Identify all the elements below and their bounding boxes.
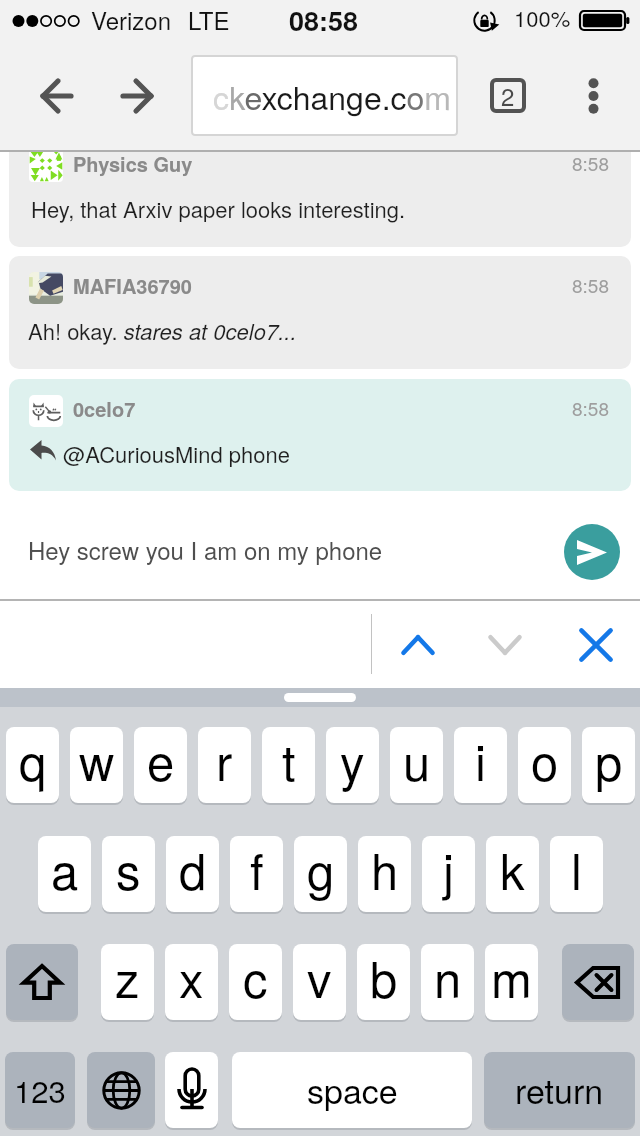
- staticText: i: [475, 727, 486, 795]
- staticText: return: [515, 1065, 604, 1114]
- button[interactable]: Send: [564, 524, 620, 580]
- button[interactable]: Tabs: [490, 78, 526, 113]
- button[interactable]: Backspace: [562, 944, 634, 1020]
- button[interactable]: b: [357, 944, 410, 1020]
- staticText: g: [307, 836, 335, 904]
- button[interactable]: q: [6, 727, 59, 803]
- button[interactable]: Forward: [113, 69, 161, 117]
- button[interactable]: r: [198, 727, 251, 803]
- staticText: f: [250, 836, 264, 904]
- button[interactable]: t: [262, 727, 315, 803]
- button[interactable]: Done: [568, 616, 625, 673]
- staticText: @ACuriousMind phone: [63, 438, 290, 470]
- button[interactable]: m: [485, 944, 538, 1020]
- button[interactable]: o: [518, 727, 571, 803]
- button[interactable]: Previous field: [390, 616, 447, 673]
- staticText: t: [282, 727, 296, 795]
- staticText: space: [307, 1065, 398, 1114]
- staticText: l: [571, 836, 582, 904]
- staticText: q: [19, 727, 47, 795]
- button[interactable]: Next field: [477, 616, 534, 673]
- staticText: ckexchange.com: [213, 73, 452, 119]
- button[interactable]: s: [102, 836, 155, 912]
- button[interactable]: Numbers: [5, 1052, 75, 1128]
- button[interactable]: y: [326, 727, 379, 803]
- staticText: 123: [14, 1067, 66, 1111]
- staticText: v: [307, 944, 332, 1012]
- button[interactable]: u: [390, 727, 443, 803]
- staticText: c: [243, 944, 268, 1012]
- button[interactable]: Dictate: [165, 1052, 218, 1128]
- button[interactable]: Shift: [6, 944, 78, 1020]
- button[interactable]: a: [38, 836, 91, 912]
- staticText: MAFIA36790: [73, 271, 192, 300]
- staticText: 08:58: [289, 1, 359, 40]
- staticText: Hey screw you I am on my phone: [28, 532, 383, 566]
- staticText: Verizon: [91, 2, 172, 36]
- staticText: a: [51, 836, 79, 904]
- button[interactable]: p: [582, 727, 635, 803]
- button[interactable]: Physics Guy: [9, 152, 631, 247]
- staticText: w: [79, 727, 115, 795]
- button[interactable]: v: [293, 944, 346, 1020]
- button[interactable]: g: [294, 836, 347, 912]
- staticText: 8:58: [572, 394, 609, 421]
- staticText: o: [531, 727, 559, 795]
- staticText: Hey, that Arxiv paper looks interesting.: [31, 193, 406, 225]
- staticText: r: [216, 727, 233, 795]
- staticText: b: [370, 944, 398, 1012]
- staticText: Ah! okay. stares at 0celo7...: [28, 315, 297, 347]
- staticText: j: [443, 836, 454, 904]
- staticText: 0celo7: [73, 394, 136, 423]
- button[interactable]: Change keyboard: [87, 1052, 155, 1128]
- staticText: d: [179, 836, 207, 904]
- button[interactable]: z: [101, 944, 154, 1020]
- button[interactable]: Return: [484, 1052, 635, 1128]
- button[interactable]: MAFIA36790: [9, 256, 631, 369]
- staticText: h: [371, 836, 399, 904]
- staticText: 8:58: [572, 271, 609, 298]
- button[interactable]: c: [229, 944, 282, 1020]
- staticText: k: [500, 836, 525, 904]
- staticText: Physics Guy: [73, 152, 193, 178]
- staticText: y: [340, 727, 365, 795]
- staticText: p: [595, 727, 623, 795]
- button[interactable]: ckexchange.com: [191, 55, 458, 136]
- button[interactable]: x: [165, 944, 218, 1020]
- button[interactable]: e: [134, 727, 187, 803]
- staticText: m: [491, 944, 532, 1012]
- staticText: LTE: [188, 2, 230, 36]
- button[interactable]: Resize keyboard: [284, 693, 356, 702]
- button[interactable]: Back: [33, 69, 81, 117]
- staticText: x: [179, 944, 204, 1012]
- staticText: 8:58: [572, 152, 609, 176]
- staticText: e: [147, 727, 175, 795]
- button[interactable]: n: [421, 944, 474, 1020]
- button[interactable]: f: [230, 836, 283, 912]
- button[interactable]: 0celo7: [9, 379, 631, 491]
- button[interactable]: l: [550, 836, 603, 912]
- button[interactable]: h: [358, 836, 411, 912]
- button[interactable]: w: [70, 727, 123, 803]
- button[interactable]: k: [486, 836, 539, 912]
- staticText: s: [116, 836, 141, 904]
- staticText: 100%: [514, 2, 571, 34]
- button[interactable]: More options: [570, 69, 616, 123]
- staticText: n: [434, 944, 462, 1012]
- staticText: 2: [501, 78, 515, 112]
- button[interactable]: j: [422, 836, 475, 912]
- staticText: u: [403, 727, 431, 795]
- staticText: z: [115, 944, 140, 1012]
- button[interactable]: d: [166, 836, 219, 912]
- button[interactable]: space: [232, 1052, 472, 1128]
- button[interactable]: i: [454, 727, 507, 803]
